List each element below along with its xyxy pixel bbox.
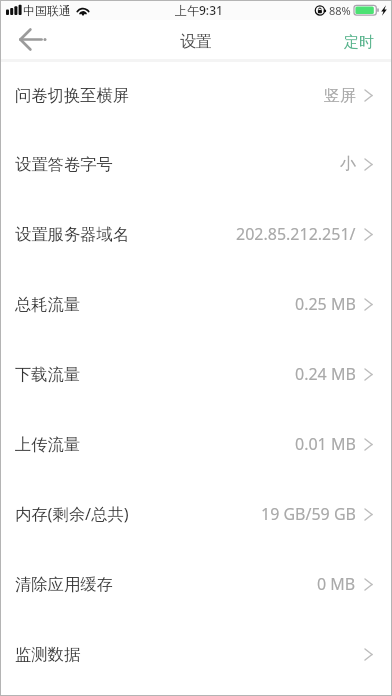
staticText: 竖屏 xyxy=(324,86,356,106)
button[interactable]: Back xyxy=(0,20,62,59)
staticText: 上传流量 xyxy=(15,434,81,455)
staticText: 设置 xyxy=(180,32,212,52)
button[interactable]: 清除应用缓存 xyxy=(0,549,392,619)
button[interactable]: 定时 xyxy=(330,20,392,59)
staticText: 设置答卷字号 xyxy=(15,154,113,175)
staticText: 问卷切换至横屏 xyxy=(15,85,130,106)
button[interactable]: 监测数据 xyxy=(0,619,392,689)
staticText: 0.25 MB xyxy=(295,293,356,315)
staticText: 202.85.212.251/ xyxy=(236,223,356,245)
staticText: 定时 xyxy=(344,33,374,52)
button[interactable]: 下载流量 xyxy=(0,339,392,409)
staticText: 总耗流量 xyxy=(15,294,81,315)
staticText: 清除应用缓存 xyxy=(15,574,113,595)
button[interactable]: 上传流量 xyxy=(0,409,392,479)
button[interactable]: 内存(剩余/总共) xyxy=(0,479,392,549)
staticText: 小 xyxy=(340,154,356,174)
button[interactable]: 设置答卷字号 xyxy=(0,129,392,199)
staticText: 0.01 MB xyxy=(295,433,356,455)
staticText: 监测数据 xyxy=(15,644,81,665)
staticText: 0.24 MB xyxy=(295,363,356,385)
button[interactable]: 总耗流量 xyxy=(0,269,392,339)
button[interactable]: 设置服务器域名 xyxy=(0,199,392,269)
staticText: 内存(剩余/总共) xyxy=(15,503,129,525)
staticText: 中国联通 xyxy=(23,3,71,18)
staticText: 88% xyxy=(329,3,351,18)
staticText: 0 MB xyxy=(317,573,356,595)
staticText: 上午9:31 xyxy=(175,2,223,18)
staticText: 19 GB/59 GB xyxy=(261,503,356,525)
staticText: 下载流量 xyxy=(15,364,81,385)
staticText: 设置服务器域名 xyxy=(15,224,130,245)
button[interactable]: 问卷切换至横屏 xyxy=(0,62,392,129)
